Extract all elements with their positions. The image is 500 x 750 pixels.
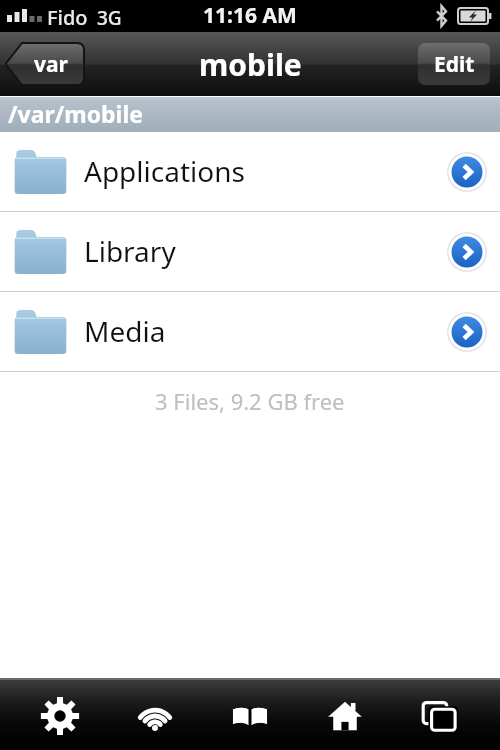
staticText: 3G [97, 5, 122, 31]
button[interactable]: Bookmarks [215, 681, 285, 750]
staticText: 3 Files, 9.2 GB free [155, 386, 345, 416]
button[interactable]: Open Media [446, 311, 488, 353]
button[interactable]: Open Library [446, 231, 488, 273]
button[interactable]: Home [310, 681, 380, 750]
staticText: Edit [434, 50, 475, 79]
button[interactable]: Windows [405, 681, 475, 750]
staticText: /var/mobile [8, 98, 144, 129]
staticText: Media [84, 312, 166, 350]
staticText: Applications [84, 152, 245, 190]
button[interactable]: Applications [0, 132, 500, 212]
button[interactable]: var [6, 43, 84, 85]
button[interactable]: Settings [25, 681, 95, 750]
staticText: Library [84, 232, 176, 270]
button[interactable]: Edit [418, 43, 490, 85]
staticText: mobile [199, 44, 302, 85]
staticText: Fido [47, 4, 88, 31]
button[interactable]: Open Applications [446, 151, 488, 193]
button[interactable]: Wi-Fi [120, 681, 190, 750]
button[interactable]: Media [0, 292, 500, 372]
button[interactable]: Library [0, 212, 500, 292]
staticText: var [34, 50, 68, 79]
staticText: 11:16 AM [203, 1, 297, 30]
